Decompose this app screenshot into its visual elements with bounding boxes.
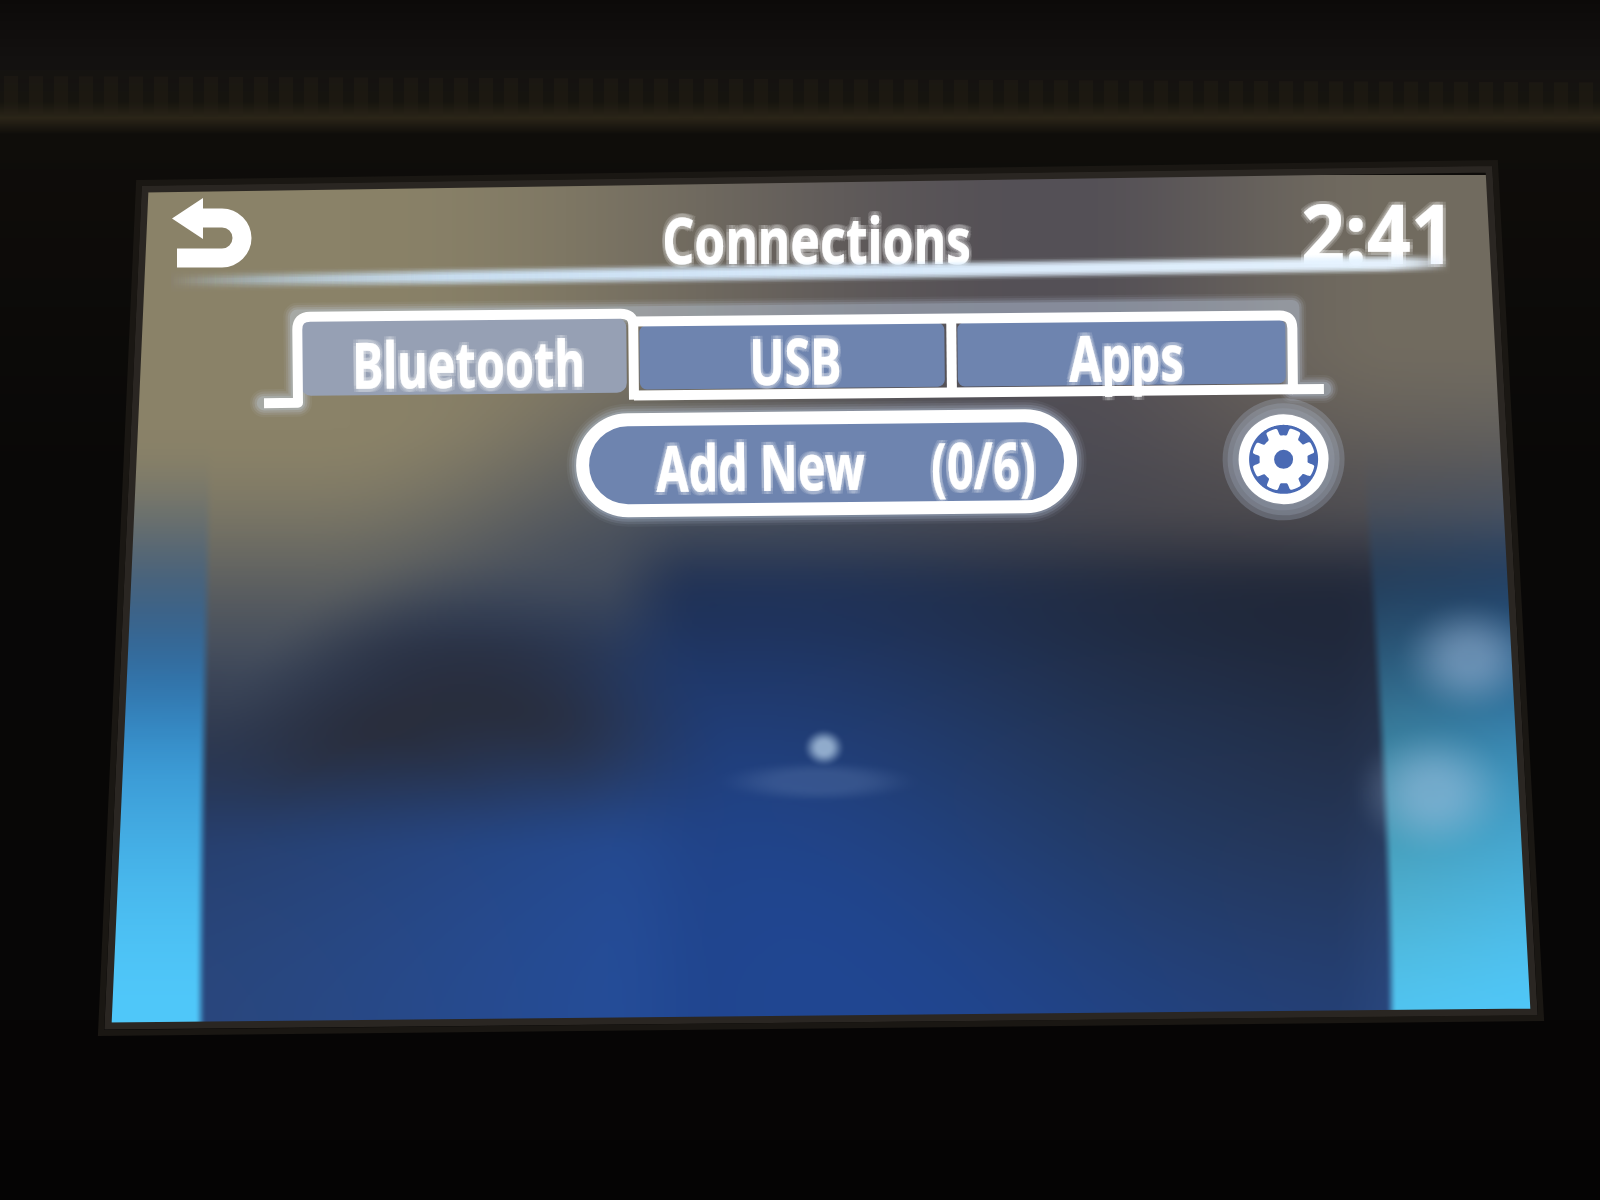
button[interactable]: [582, 418, 1070, 509]
button[interactable]: [636, 316, 954, 396]
button[interactable]: Back: [160, 186, 264, 284]
button[interactable]: [954, 316, 1294, 396]
button[interactable]: [264, 308, 636, 404]
button[interactable]: Bluetooth settings: [1236, 417, 1330, 511]
